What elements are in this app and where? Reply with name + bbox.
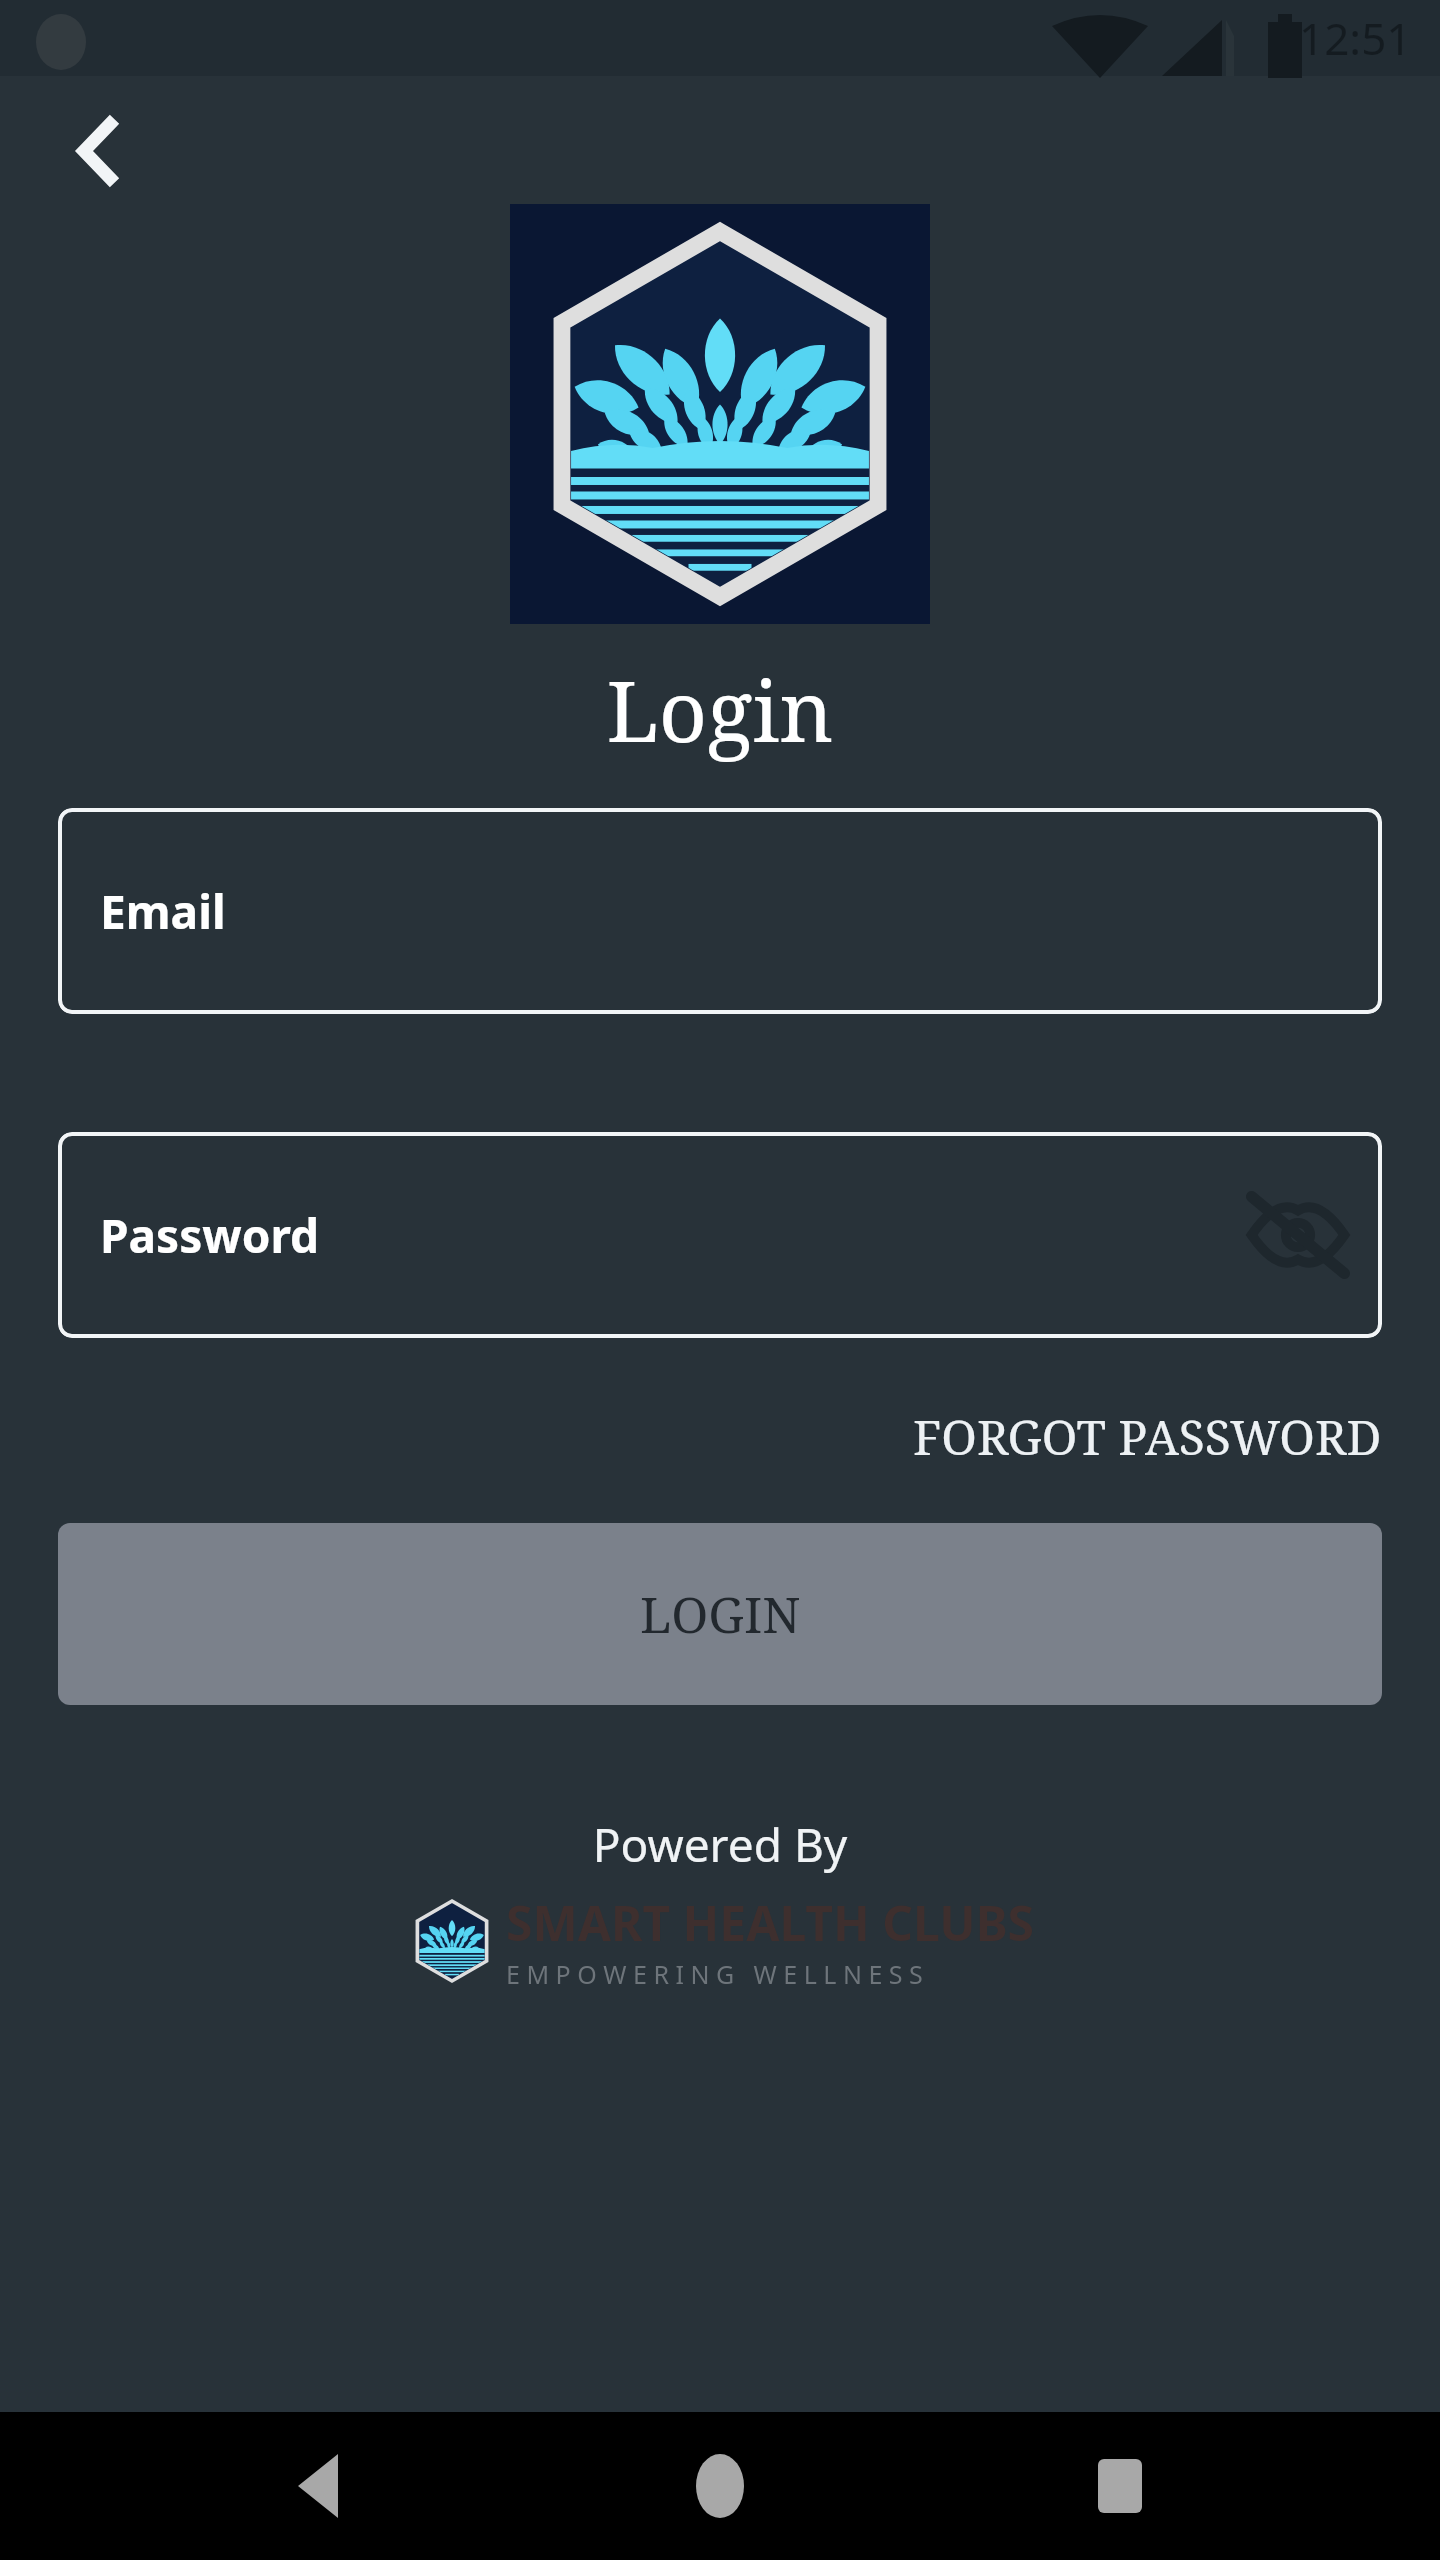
staticText: Login — [0, 652, 1440, 766]
button[interactable]: Back — [50, 104, 144, 198]
staticText: FORGOT PASSWORD — [913, 1404, 1382, 1469]
staticText: Powered By — [0, 1813, 1440, 1876]
staticText: LOGIN — [640, 1580, 801, 1648]
button[interactable]: Show password — [1240, 1177, 1356, 1293]
button[interactable]: Password — [58, 1132, 1382, 1338]
staticText: SMART HEALTH CLUBS — [506, 1890, 1035, 1955]
staticText: Password — [100, 1204, 320, 1267]
button[interactable]: LOGIN — [58, 1523, 1382, 1705]
button[interactable]: Email — [58, 808, 1382, 1014]
button[interactable]: FORGOT PASSWORD — [909, 1394, 1386, 1479]
staticText: E M P O W E R I N G W E L L N E S S — [506, 1957, 923, 1991]
staticText: Email — [100, 880, 226, 943]
staticText: 12:51 — [1299, 8, 1412, 68]
